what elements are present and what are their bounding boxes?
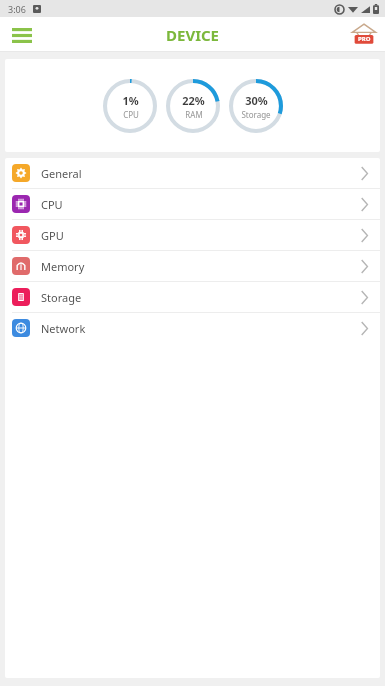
staticText: 1% [122, 93, 139, 108]
staticText: 22% [182, 93, 205, 108]
staticText: Memory [41, 259, 361, 274]
staticText: Storage [241, 109, 271, 120]
staticText: General [41, 166, 361, 181]
button[interactable]: Network [5, 313, 380, 343]
staticText: 3:06 [8, 3, 26, 15]
button[interactable]: General [5, 158, 380, 188]
staticText: 30% [245, 93, 268, 108]
staticText: CPU [123, 109, 139, 120]
button[interactable]: 22% [166, 79, 220, 133]
staticText: Storage [41, 290, 361, 305]
staticText: DEVICE [166, 25, 219, 45]
button[interactable]: Memory [5, 251, 380, 281]
button[interactable]: Storage [5, 282, 380, 312]
staticText: RAM [185, 109, 203, 120]
button[interactable]: GPU [5, 220, 380, 250]
button[interactable]: 30% [229, 79, 283, 133]
staticText: Network [41, 321, 361, 336]
button[interactable]: Upgrade to PRO [347, 18, 381, 52]
staticText: CPU [41, 197, 361, 212]
staticText: GPU [41, 228, 361, 243]
button[interactable]: CPU [5, 189, 380, 219]
button[interactable]: 1% [103, 79, 157, 133]
button[interactable]: Open navigation menu [6, 19, 38, 51]
staticText: PRO [358, 35, 371, 43]
